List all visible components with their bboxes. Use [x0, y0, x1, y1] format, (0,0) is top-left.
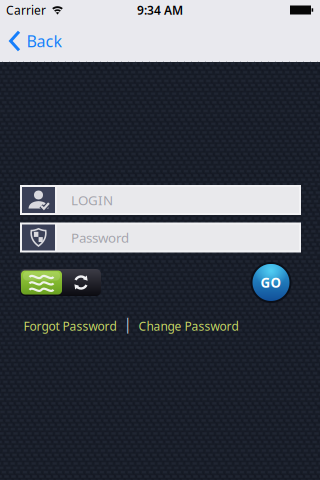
staticText: LOGIN	[71, 191, 113, 209]
button[interactable]: Change Password	[138, 318, 238, 334]
staticText: Change Password	[138, 318, 238, 334]
staticText: Carrier	[6, 2, 46, 18]
button[interactable]: Back	[0, 20, 72, 62]
staticText: 9:34 AM	[137, 2, 183, 18]
staticText: │	[123, 318, 131, 333]
staticText: GO	[260, 274, 281, 291]
button[interactable]: Forgot Password	[23, 318, 116, 334]
button[interactable]: Refresh captcha	[62, 270, 100, 294]
staticText: Forgot Password	[23, 318, 116, 334]
button[interactable]: Go	[250, 262, 291, 303]
button[interactable]: Captcha image	[21, 270, 62, 294]
staticText: Back	[26, 30, 62, 52]
staticText: Password	[71, 229, 129, 246]
